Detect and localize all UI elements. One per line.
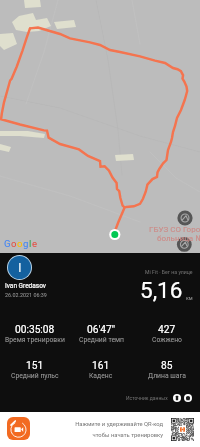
staticText: ГБУЗ СО Город	[149, 225, 200, 234]
staticText: 85	[161, 360, 173, 372]
staticText: Источник данных	[126, 395, 168, 401]
staticText: больница №	[157, 234, 200, 243]
button[interactable]: I	[7, 255, 32, 280]
button[interactable]: 427	[134, 324, 200, 344]
staticText: 06'47"	[87, 324, 115, 336]
staticText: 00:35:08	[15, 324, 55, 336]
button[interactable]: Mi Fit	[7, 417, 30, 440]
staticText: 26.02.2021 06:39	[5, 292, 47, 298]
staticText: G	[4, 238, 11, 249]
button[interactable]: QR code	[171, 418, 194, 441]
staticText: e	[32, 238, 38, 249]
button[interactable]: 85	[134, 360, 200, 380]
staticText: Сожжено	[152, 336, 182, 344]
staticText: км	[186, 295, 193, 301]
staticText: Средний темп	[79, 336, 124, 344]
button[interactable]: 06'47"	[68, 324, 134, 344]
staticText: Длина шага	[148, 372, 187, 380]
staticText: Нажмите и удерживайте QR-код	[75, 421, 163, 428]
staticText: Mi Fit · Бег на улице	[145, 269, 193, 275]
staticText: Средний пульс	[11, 372, 59, 380]
button[interactable]: 161	[68, 360, 134, 380]
staticText: o	[11, 238, 17, 249]
staticText: o	[17, 238, 23, 249]
button[interactable]: Google Fit source	[184, 394, 192, 402]
staticText: Каденс	[89, 372, 113, 380]
staticText: 161	[92, 360, 110, 372]
button[interactable]: 00:35:08	[2, 324, 68, 344]
staticText: 427	[158, 324, 176, 336]
button[interactable]: Mi Fit source	[173, 394, 181, 402]
staticText: Ivan Gredasov	[5, 282, 46, 290]
staticText: чтобы начать тренировку	[92, 432, 163, 439]
staticText: Время тренировки	[5, 336, 65, 344]
staticText: g	[23, 238, 29, 249]
staticText: 151	[26, 360, 44, 372]
staticText: 5,16	[140, 277, 183, 303]
button[interactable]: 151	[2, 360, 68, 380]
staticText: I	[18, 260, 22, 275]
staticText: l	[29, 238, 32, 249]
